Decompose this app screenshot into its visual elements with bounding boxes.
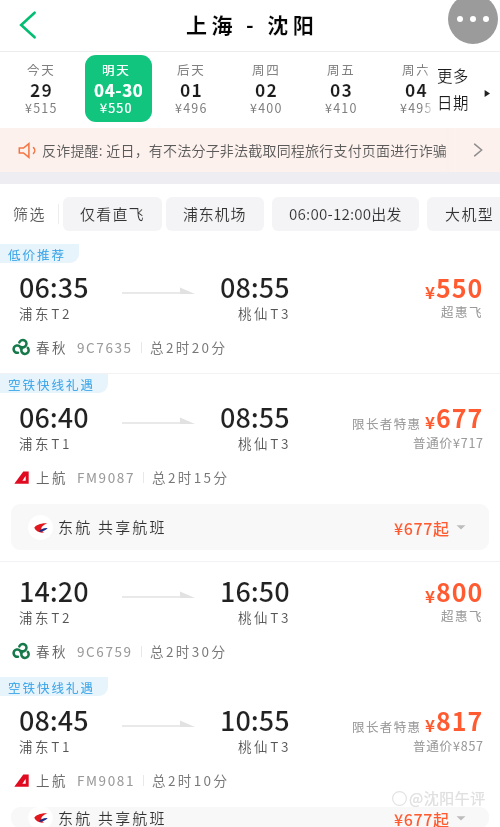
- button[interactable]: 后天: [160, 55, 227, 122]
- staticText: 桃仙T3: [220, 433, 291, 453]
- staticText: ¥677起: [394, 516, 450, 539]
- button[interactable]: 周四: [235, 55, 302, 122]
- staticText: 普通价¥857: [413, 736, 484, 754]
- staticText: 桃仙T3: [220, 303, 291, 323]
- staticText: 总2时20分: [150, 337, 228, 357]
- staticText: 空铁快线礼遇: [8, 678, 96, 696]
- staticText: 明天: [102, 60, 131, 78]
- button[interactable]: 大机型: [444, 197, 494, 231]
- staticText: 29: [30, 77, 54, 102]
- staticText: 限长者特惠: [352, 717, 422, 735]
- staticText: 普通价¥717: [413, 433, 484, 451]
- button[interactable]: 东航 共享航班: [28, 504, 466, 550]
- staticText: 03: [330, 77, 354, 102]
- staticText: 9C7635: [77, 337, 133, 357]
- staticText: 浦东T2: [19, 303, 72, 323]
- staticText: 08:55: [220, 267, 290, 306]
- staticText: 超惠飞: [441, 606, 484, 624]
- button[interactable]: 14:20: [0, 562, 500, 677]
- staticText: 550: [436, 269, 484, 305]
- button[interactable]: 更多: [448, 0, 498, 44]
- button[interactable]: 低价推荐: [0, 244, 500, 373]
- staticText: 10:55: [220, 700, 290, 739]
- staticText: 东航 共享航班: [58, 807, 167, 827]
- staticText: 超惠飞: [441, 302, 484, 320]
- staticText: 04-30: [94, 77, 144, 102]
- staticText: 08:45: [19, 700, 89, 739]
- staticText: 02: [255, 77, 279, 102]
- staticText: ¥550: [100, 98, 133, 116]
- staticText: 筛选: [13, 203, 47, 225]
- staticText: 浦东T2: [19, 607, 72, 627]
- staticText: 677: [436, 399, 484, 435]
- staticText: ¥515: [25, 98, 58, 116]
- staticText: 浦东T1: [19, 433, 72, 453]
- staticText: 817: [436, 702, 484, 738]
- staticText: 空铁快线礼遇: [8, 375, 96, 393]
- button[interactable]: 仅看直飞: [80, 197, 145, 231]
- staticText: 周四: [252, 60, 281, 78]
- button[interactable]: 今天: [10, 55, 77, 122]
- staticText: 总2时15分: [152, 467, 230, 487]
- staticText: 浦东T1: [19, 736, 72, 756]
- staticText: FM9087: [77, 467, 135, 487]
- staticText: 16:50: [220, 571, 290, 610]
- staticText: ¥495: [400, 98, 433, 116]
- staticText: 反诈提醒: 近日，有不法分子非法截取同程旅行支付页面进行诈骗: [42, 140, 448, 160]
- staticText: 08:55: [220, 397, 290, 436]
- staticText: 上航: [36, 770, 68, 790]
- button[interactable]: 更多: [424, 52, 500, 128]
- button[interactable]: 筛选: [12, 197, 46, 231]
- staticText: 周六: [402, 60, 431, 78]
- staticText: FM9081: [77, 770, 135, 790]
- button[interactable]: 返回: [6, 4, 50, 48]
- staticText: 东航 共享航班: [58, 516, 167, 538]
- staticText: 仅看直飞: [80, 203, 145, 225]
- staticText: 上航: [36, 467, 68, 487]
- staticText: 06:00-12:00出发: [289, 203, 402, 225]
- staticText: ¥677起: [394, 807, 450, 827]
- staticText: 14:20: [19, 571, 89, 610]
- staticText: 总2时30分: [150, 641, 228, 661]
- staticText: 大机型: [445, 203, 495, 225]
- button[interactable]: 06:00-12:00出发: [289, 197, 402, 231]
- button[interactable]: 周五: [310, 55, 377, 122]
- staticText: ¥496: [175, 98, 208, 116]
- button[interactable]: 周六: [385, 55, 452, 122]
- staticText: 浦东机场: [183, 203, 247, 225]
- staticText: 日期: [437, 91, 470, 113]
- button[interactable]: 浦东机场: [183, 197, 247, 231]
- staticText: ¥: [425, 712, 436, 737]
- staticText: 桃仙T3: [220, 736, 291, 756]
- staticText: 春秋: [36, 337, 68, 357]
- staticText: ¥: [425, 279, 436, 304]
- staticText: 总2时10分: [152, 770, 230, 790]
- staticText: 限长者特惠: [352, 414, 422, 432]
- staticText: 上海 - 沈阳: [186, 9, 319, 39]
- staticText: 桃仙T3: [220, 607, 291, 627]
- button[interactable]: 空铁快线礼遇: [0, 374, 500, 503]
- staticText: 后天: [177, 60, 206, 78]
- button[interactable]: 东航 共享航班: [28, 807, 466, 827]
- button[interactable]: 反诈提醒: 近日，有不法分子非法截取同程旅行支付页面进行诈骗: [0, 128, 500, 172]
- staticText: ¥: [425, 583, 436, 608]
- staticText: 04: [405, 77, 429, 102]
- staticText: ¥400: [250, 98, 283, 116]
- staticText: 今天: [27, 60, 56, 78]
- staticText: 低价推荐: [8, 245, 67, 263]
- staticText: 更多: [437, 64, 470, 86]
- staticText: 06:35: [19, 267, 89, 306]
- staticText: ¥410: [325, 98, 358, 116]
- staticText: 01: [180, 77, 204, 102]
- staticText: 06:40: [19, 397, 89, 436]
- staticText: 春秋: [36, 641, 68, 661]
- button[interactable]: 空铁快线礼遇: [0, 677, 500, 806]
- staticText: 9C6759: [77, 641, 133, 661]
- staticText: @沈阳午评: [409, 787, 486, 809]
- staticText: ¥: [425, 409, 436, 434]
- button[interactable]: 明天: [85, 55, 152, 122]
- staticText: 800: [436, 573, 484, 609]
- staticText: 周五: [327, 60, 356, 78]
